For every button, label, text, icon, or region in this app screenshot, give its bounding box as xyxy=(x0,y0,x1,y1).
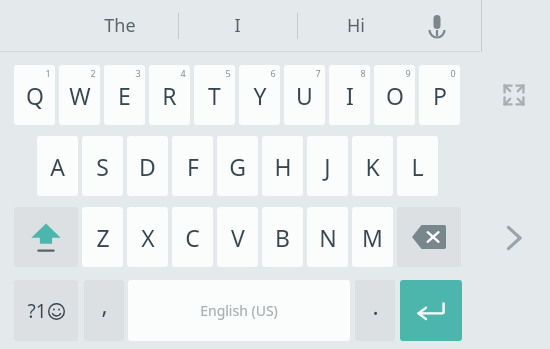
button[interactable]: O xyxy=(374,65,415,125)
button[interactable]: Z xyxy=(82,207,123,267)
staticText: ?1 xyxy=(27,298,47,324)
staticText: L xyxy=(411,151,424,182)
staticText: Hi xyxy=(347,13,365,38)
staticText: U xyxy=(296,80,313,111)
button[interactable]: W xyxy=(59,65,100,125)
staticText: The xyxy=(104,13,136,38)
button[interactable]: F xyxy=(172,136,213,196)
button[interactable]: Next xyxy=(492,216,536,260)
button[interactable]: G xyxy=(217,136,258,196)
button[interactable]: X xyxy=(127,207,168,267)
button[interactable]: V xyxy=(217,207,258,267)
button[interactable]: Voice input xyxy=(412,4,462,48)
button[interactable]: B xyxy=(262,207,303,267)
staticText: 7 xyxy=(315,67,321,79)
button[interactable]: R xyxy=(149,65,190,125)
staticText: W xyxy=(69,80,91,111)
staticText: V xyxy=(231,222,245,253)
button[interactable]: T xyxy=(194,65,235,125)
staticText: 4 xyxy=(180,67,186,79)
button[interactable]: Q xyxy=(14,65,55,125)
staticText: K xyxy=(365,151,380,182)
button[interactable]: A xyxy=(37,136,78,196)
button[interactable]: I xyxy=(329,65,370,125)
staticText: M xyxy=(362,222,383,253)
button[interactable]: English (US) xyxy=(128,280,350,341)
staticText: B xyxy=(275,222,290,253)
staticText: 0 xyxy=(450,67,456,79)
button[interactable]: J xyxy=(307,136,348,196)
staticText: E xyxy=(118,80,131,111)
button[interactable]: E xyxy=(104,65,145,125)
button[interactable]: D xyxy=(127,136,168,196)
button[interactable]: , xyxy=(84,280,124,341)
staticText: I xyxy=(346,80,354,111)
button[interactable]: M xyxy=(352,207,393,267)
button[interactable]: U xyxy=(284,65,325,125)
staticText: T xyxy=(208,80,221,111)
staticText: J xyxy=(324,151,331,182)
staticText: 8 xyxy=(360,67,366,79)
button[interactable]: Backspace xyxy=(397,207,461,267)
staticText: Z xyxy=(96,222,110,253)
staticText: 2 xyxy=(90,67,96,79)
staticText: O xyxy=(386,80,404,111)
button[interactable]: Expand keyboard xyxy=(492,75,536,115)
staticText: G xyxy=(229,151,246,182)
button[interactable]: K xyxy=(352,136,393,196)
button[interactable]: Enter xyxy=(400,280,462,341)
staticText: 3 xyxy=(135,67,141,79)
staticText: N xyxy=(319,222,337,253)
button[interactable]: S xyxy=(82,136,123,196)
button[interactable]: Y xyxy=(239,65,280,125)
staticText: . xyxy=(372,290,379,321)
staticText: Q xyxy=(26,80,44,111)
staticText: H xyxy=(274,151,292,182)
staticText: F xyxy=(187,151,199,182)
button[interactable]: L xyxy=(397,136,438,196)
button[interactable]: ?1 xyxy=(14,280,78,341)
staticText: A xyxy=(50,151,65,182)
staticText: I xyxy=(234,13,241,38)
button[interactable]: . xyxy=(355,280,395,341)
staticText: D xyxy=(139,151,156,182)
staticText: 1 xyxy=(45,67,51,79)
button[interactable]: Hi xyxy=(298,0,414,51)
staticText: X xyxy=(141,222,155,253)
staticText: 6 xyxy=(270,67,276,79)
button[interactable]: N xyxy=(307,207,348,267)
button[interactable]: Caps lock xyxy=(14,207,78,267)
staticText: Y xyxy=(253,80,267,111)
button[interactable]: H xyxy=(262,136,303,196)
staticText: P xyxy=(433,80,447,111)
button[interactable]: The xyxy=(62,0,178,51)
staticText: C xyxy=(185,222,200,253)
button[interactable]: P xyxy=(419,65,460,125)
staticText: R xyxy=(162,80,177,111)
button[interactable]: I xyxy=(179,0,295,51)
staticText: 9 xyxy=(405,67,411,79)
staticText: S xyxy=(96,151,109,182)
staticText: English (US) xyxy=(200,301,278,320)
staticText: 5 xyxy=(225,67,231,79)
button[interactable]: C xyxy=(172,207,213,267)
staticText: , xyxy=(101,289,108,320)
